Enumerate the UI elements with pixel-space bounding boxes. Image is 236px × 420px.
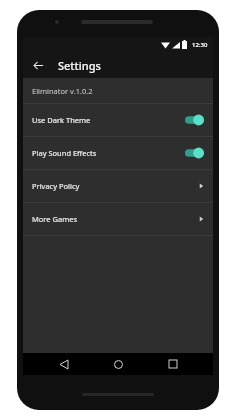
button[interactable]: Recent apps xyxy=(159,353,187,375)
staticText: 12:30 xyxy=(192,41,208,49)
button[interactable]: Home xyxy=(104,353,132,375)
other: Toggle on xyxy=(185,147,204,159)
staticText: More Games xyxy=(32,214,199,224)
button[interactable]: More Games xyxy=(23,203,213,235)
other: Toggle on xyxy=(185,114,204,126)
button[interactable]: Back xyxy=(50,353,78,375)
staticText: Eliminator v.1.0.2 xyxy=(32,86,93,96)
staticText: Settings xyxy=(58,58,101,73)
staticText: Use Dark Theme xyxy=(32,115,185,125)
staticText: Privacy Policy xyxy=(32,181,199,191)
staticText: Play Sound Effects xyxy=(32,148,185,158)
button[interactable]: Privacy Policy xyxy=(23,170,213,202)
button[interactable]: Back xyxy=(28,55,48,75)
button[interactable]: Play Sound Effects xyxy=(23,137,213,169)
button[interactable]: Use Dark Theme xyxy=(23,104,213,136)
